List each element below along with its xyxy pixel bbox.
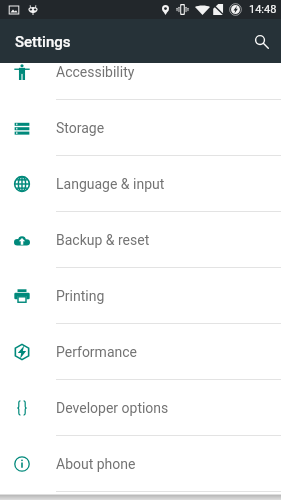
button[interactable]: Printing — [0, 268, 281, 324]
staticText: Accessibility — [56, 64, 135, 80]
button[interactable]: Storage — [0, 100, 281, 156]
button[interactable]: Backup & reset — [0, 212, 281, 268]
button[interactable]: Language & input — [0, 156, 281, 212]
staticText: Language & input — [56, 176, 165, 192]
staticText: Storage — [56, 120, 105, 136]
button[interactable]: About phone — [0, 436, 281, 492]
button[interactable]: Search — [237, 19, 281, 63]
staticText: 14:48 — [249, 3, 277, 16]
staticText: Developer options — [56, 400, 169, 416]
button[interactable]: Developer options — [0, 380, 281, 436]
button[interactable]: Performance — [0, 324, 281, 380]
staticText: About phone — [56, 456, 136, 472]
staticText: Performance — [56, 344, 137, 360]
button[interactable]: Accessibility — [0, 63, 281, 100]
staticText: Settings — [15, 33, 71, 51]
staticText: Backup & reset — [56, 232, 150, 248]
staticText: Printing — [56, 288, 105, 304]
